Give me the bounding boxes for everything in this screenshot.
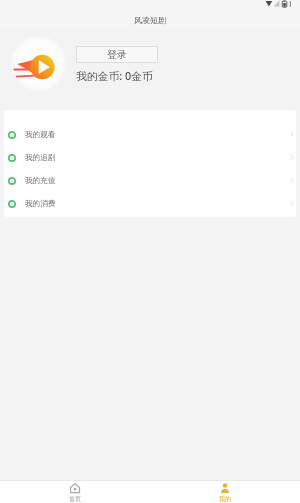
staticText: 首页 bbox=[69, 495, 81, 503]
button[interactable]: 我的充值 bbox=[4, 169, 296, 192]
staticText: 登录 bbox=[107, 48, 127, 61]
staticText: 我的充值 bbox=[25, 176, 56, 186]
button[interactable]: 登录 bbox=[76, 46, 158, 63]
button[interactable]: 我的 bbox=[150, 483, 300, 503]
staticText: 风凌短剧 bbox=[134, 15, 166, 25]
button[interactable]: 首页 bbox=[0, 483, 150, 503]
staticText: 我的消费 bbox=[25, 199, 56, 209]
button[interactable]: 我的追剧 bbox=[4, 146, 296, 169]
button[interactable]: 我的观看 bbox=[4, 123, 296, 146]
staticText: 我的 bbox=[219, 495, 231, 503]
staticText: 我的追剧 bbox=[25, 153, 56, 163]
staticText: 我的观看 bbox=[25, 130, 56, 140]
staticText: 我的金币: 0金币 bbox=[76, 68, 153, 83]
button[interactable]: 我的消费 bbox=[4, 192, 296, 215]
